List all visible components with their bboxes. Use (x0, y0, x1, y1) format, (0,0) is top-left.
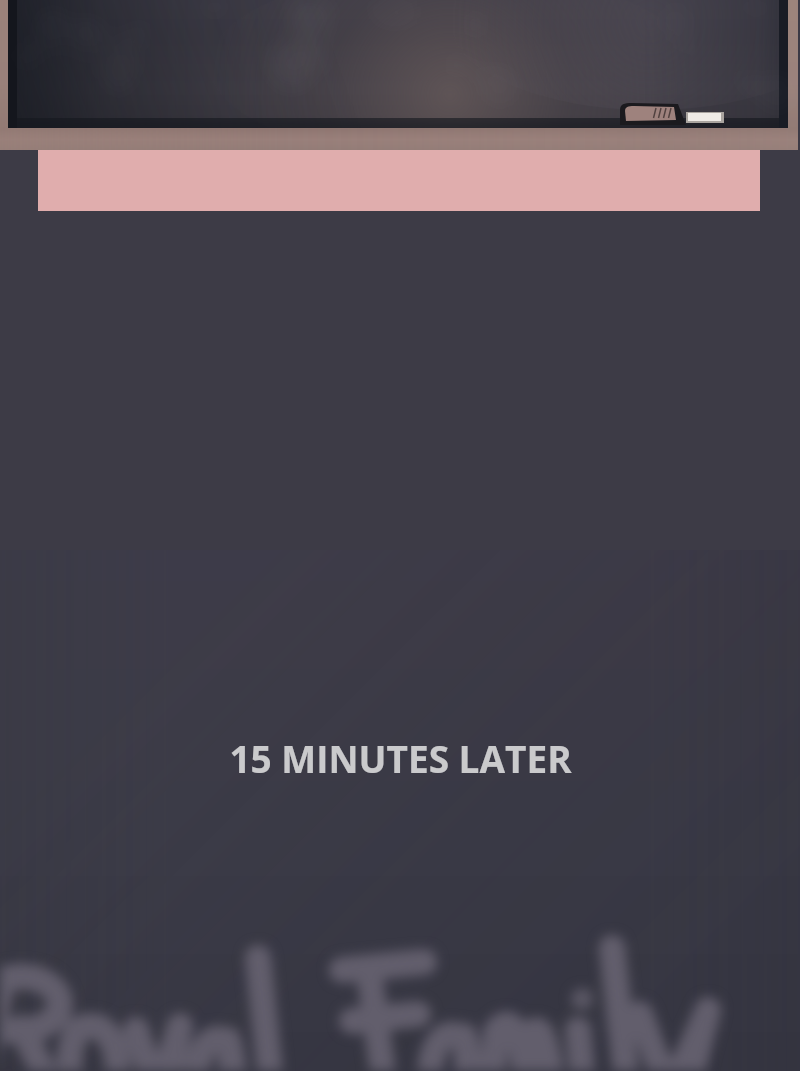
staticText: 15 MINUTES LATER (229, 733, 572, 783)
